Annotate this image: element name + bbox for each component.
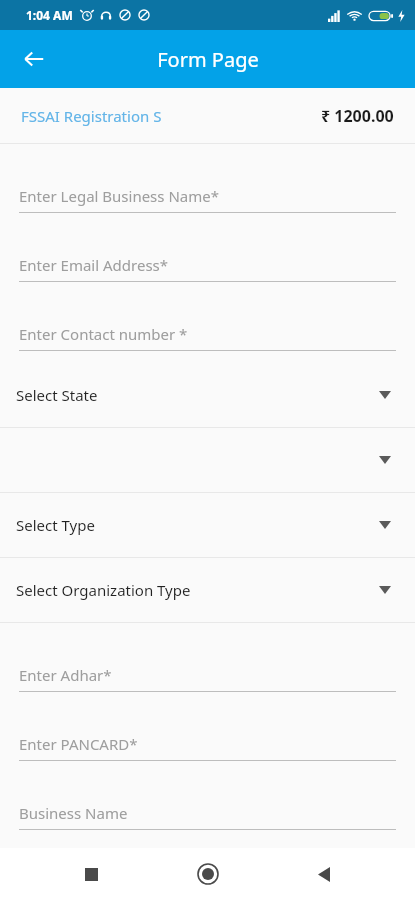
- staticText: Enter PANCARD*: [19, 734, 138, 754]
- staticText: FSSAI Registration S: [21, 106, 162, 126]
- staticText: Enter Adhar*: [19, 665, 112, 685]
- staticText: Form Page: [157, 46, 259, 73]
- button[interactable]: [0, 428, 415, 493]
- button[interactable]: Enter Email Address*: [0, 225, 415, 294]
- button[interactable]: Select Organization Type: [0, 558, 415, 623]
- button[interactable]: Enter Contact number *: [0, 294, 415, 363]
- button[interactable]: Home: [182, 848, 234, 900]
- staticText: Enter Contact number *: [19, 324, 188, 344]
- staticText: Enter Email Address*: [19, 255, 169, 275]
- button[interactable]: Back: [298, 848, 350, 900]
- staticText: Enter Legal Business Name*: [19, 186, 219, 206]
- staticText: Select State: [16, 385, 98, 405]
- button[interactable]: Back: [12, 37, 56, 81]
- staticText: Select Type: [16, 515, 95, 535]
- button[interactable]: Business Name: [0, 773, 415, 842]
- button[interactable]: Select State: [0, 363, 415, 428]
- staticText: ₹ 1200.00: [321, 105, 394, 127]
- staticText: Select Organization Type: [16, 580, 191, 600]
- button[interactable]: Enter Adhar*: [0, 635, 415, 704]
- button[interactable]: Select Type: [0, 493, 415, 558]
- staticText: Business Name: [19, 803, 128, 823]
- button[interactable]: Enter Legal Business Name*: [0, 156, 415, 225]
- button[interactable]: Enter PANCARD*: [0, 704, 415, 773]
- button[interactable]: FSSAI Registration S: [0, 88, 415, 143]
- button[interactable]: Recents: [65, 848, 117, 900]
- staticText: 1:04 AM: [26, 7, 73, 23]
